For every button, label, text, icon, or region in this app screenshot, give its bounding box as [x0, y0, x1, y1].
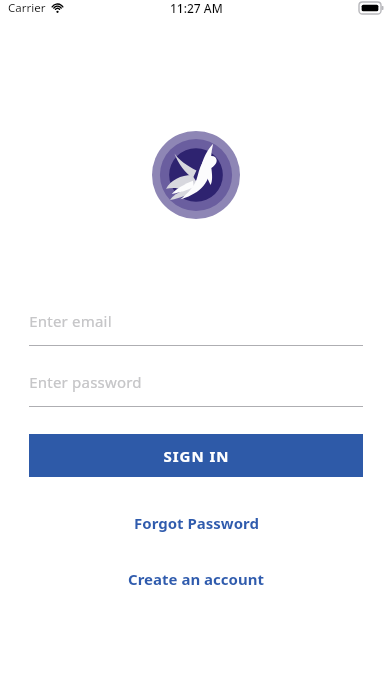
staticText: Enter password — [29, 372, 142, 392]
staticText: Create an account — [128, 569, 264, 589]
other: Battery — [359, 2, 384, 14]
staticText: Forgot Password — [134, 513, 259, 533]
button[interactable]: SIGN IN — [29, 434, 363, 477]
staticText: Carrier — [8, 0, 46, 16]
staticText: 11:27 AM — [170, 0, 223, 16]
button[interactable]: Enter email — [29, 305, 363, 346]
staticText: SIGN IN — [163, 446, 230, 466]
other: App logo — [152, 131, 240, 219]
button[interactable]: Create an account — [112, 564, 280, 594]
button[interactable]: Forgot Password — [118, 508, 275, 538]
button[interactable]: Enter password — [29, 366, 363, 407]
staticText: Enter email — [29, 311, 112, 331]
